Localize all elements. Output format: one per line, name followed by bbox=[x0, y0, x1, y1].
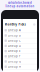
staticText: Lineup F bbox=[8, 54, 20, 58]
staticText: Lineup G bbox=[8, 60, 21, 63]
staticText: Lineup E bbox=[8, 49, 20, 53]
button[interactable]: Lineup B bbox=[3, 33, 37, 38]
staticText: lineup automation bbox=[5, 4, 34, 8]
staticText: calculator-based bbox=[8, 1, 32, 4]
staticText: Monthly Picks bbox=[4, 23, 25, 26]
button[interactable]: Lineup A bbox=[3, 28, 37, 33]
button[interactable]: Lineup G bbox=[3, 59, 37, 64]
staticText: Lineup A bbox=[8, 28, 21, 32]
staticText: Lineup C bbox=[8, 39, 21, 42]
button[interactable]: Profile bbox=[33, 23, 35, 26]
staticText: Lineup D bbox=[8, 44, 21, 48]
button[interactable]: Lineup C bbox=[3, 38, 37, 43]
button[interactable]: Lineup E bbox=[3, 49, 37, 54]
button[interactable]: Lineup D bbox=[3, 43, 37, 49]
button[interactable]: Lineup F bbox=[3, 54, 37, 59]
staticText: Lineup B bbox=[8, 34, 21, 37]
button[interactable]: Lineup H bbox=[3, 64, 37, 69]
staticText: Lineup H bbox=[8, 65, 21, 68]
